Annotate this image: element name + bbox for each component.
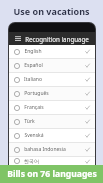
staticText: English — [24, 48, 42, 55]
staticText: Recognition language — [25, 35, 89, 43]
button[interactable]: Português — [9, 87, 95, 100]
button[interactable]: bahasa Indonesia — [9, 143, 95, 156]
staticText: Italiano — [24, 76, 42, 83]
button[interactable]: Türk — [9, 115, 95, 128]
staticText: Français — [24, 104, 44, 111]
staticText: Türk — [24, 118, 35, 125]
button[interactable]: 한국어 — [9, 157, 95, 165]
staticText: Bills on 76 languages — [7, 168, 97, 180]
staticText: bahasa Indonesia — [24, 146, 66, 153]
staticText: Português — [24, 90, 49, 97]
button[interactable]: Bills on 76 languages — [0, 165, 103, 183]
button[interactable]: Menu — [13, 34, 22, 43]
staticText: 한국어 — [24, 158, 39, 164]
staticText: Use on vacations — [13, 5, 90, 17]
button[interactable]: Español — [9, 59, 95, 72]
button[interactable]: English — [9, 45, 95, 58]
button[interactable]: Italiano — [9, 73, 95, 86]
staticText: Español — [24, 62, 43, 69]
button[interactable]: Français — [9, 101, 95, 114]
button[interactable]: Svenská — [9, 129, 95, 142]
staticText: Svenská — [24, 132, 44, 139]
